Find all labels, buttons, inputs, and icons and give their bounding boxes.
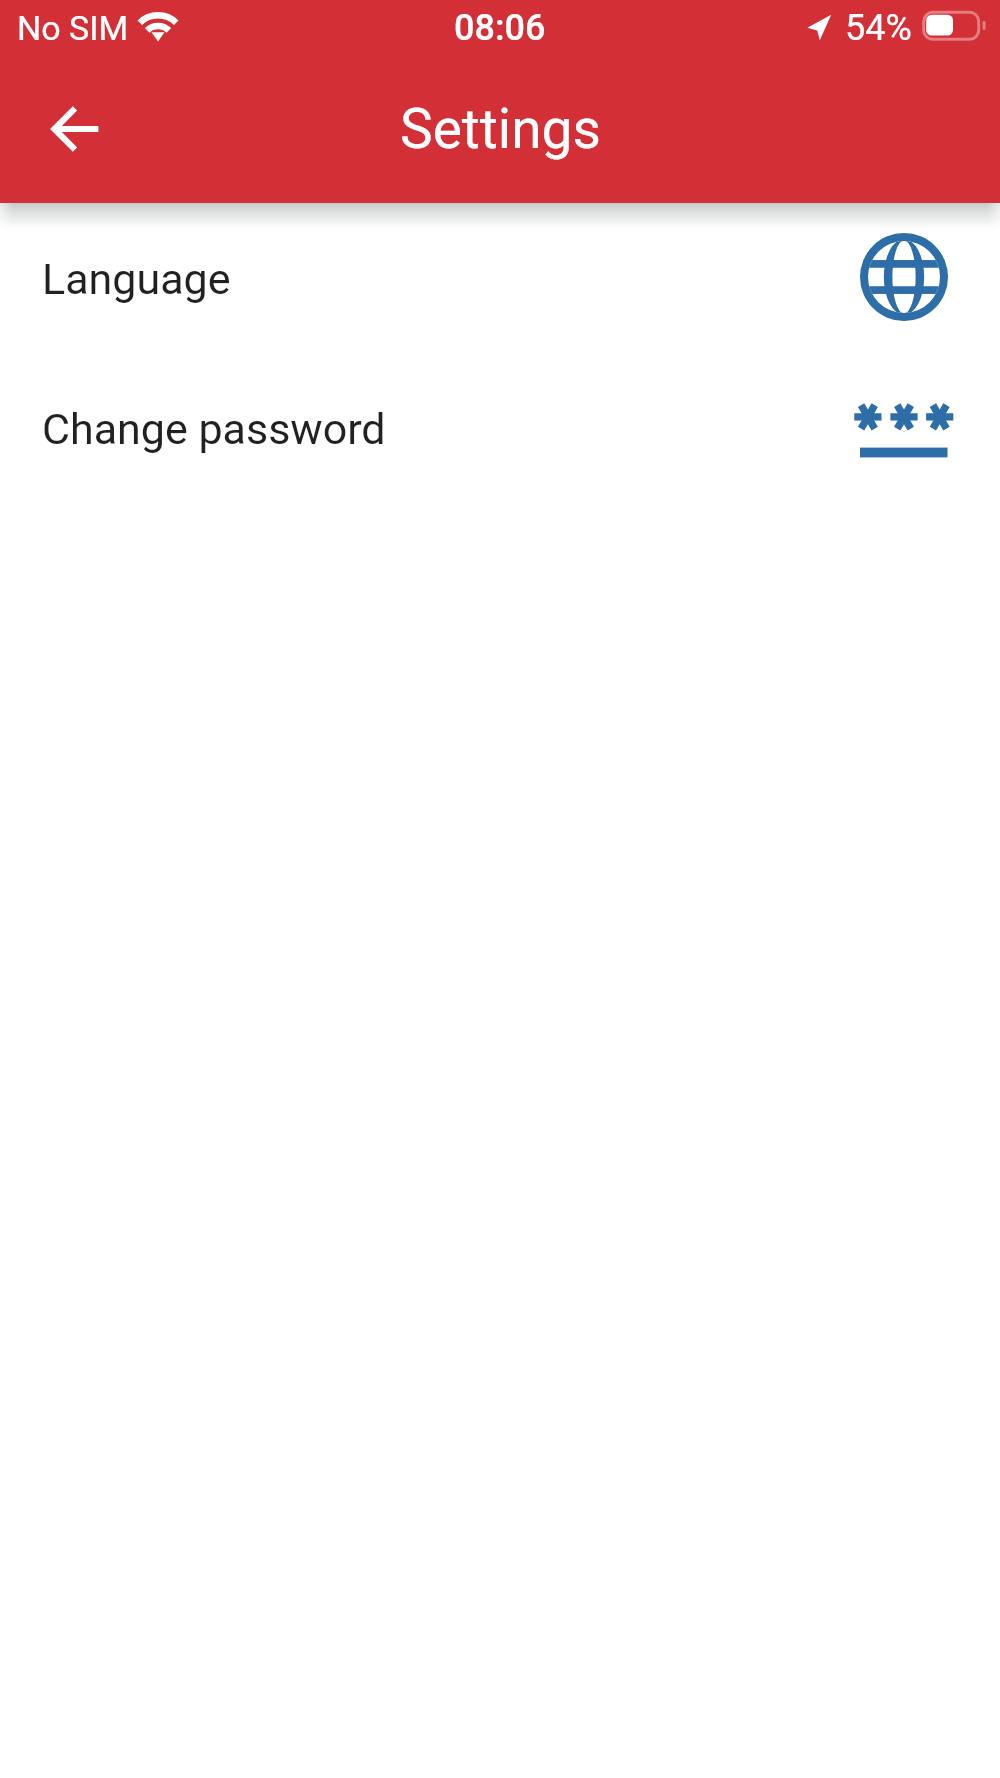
button[interactable]: Language <box>0 204 1000 354</box>
staticText: Settings <box>400 97 601 161</box>
staticText: 08:06 <box>454 7 546 49</box>
staticText: Change password <box>42 404 386 454</box>
staticText: No SIM <box>17 8 129 48</box>
staticText: 54% <box>845 7 912 49</box>
button[interactable]: Back <box>20 74 130 184</box>
staticText: Language <box>42 254 231 304</box>
button[interactable]: Change password <box>0 354 1000 504</box>
